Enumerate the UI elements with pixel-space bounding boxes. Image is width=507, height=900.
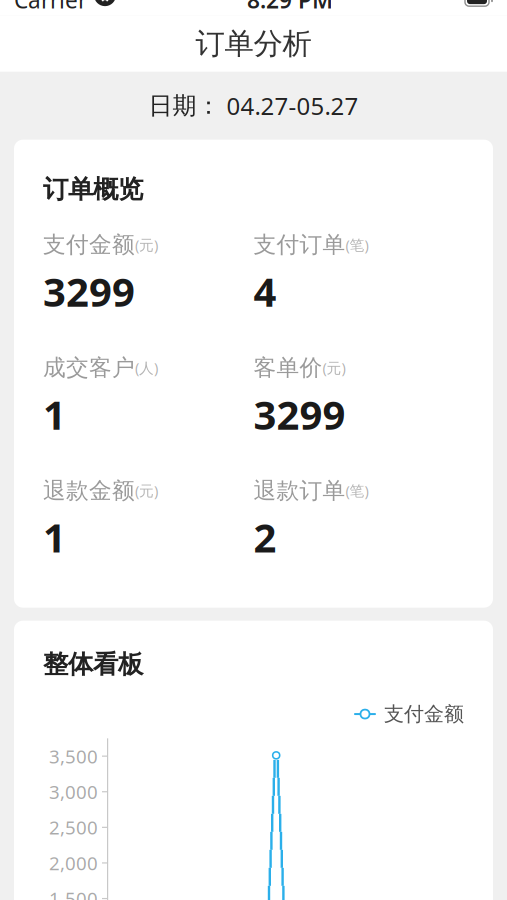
staticText: 退款金额 bbox=[43, 477, 135, 504]
staticText: 4 bbox=[253, 265, 276, 318]
staticText: 2 bbox=[253, 510, 276, 564]
staticText: 日期： bbox=[148, 91, 220, 120]
staticText: 1 bbox=[43, 388, 66, 441]
staticText: 1 bbox=[43, 510, 66, 564]
staticText: 3,000 bbox=[49, 779, 98, 804]
staticText: (元) bbox=[322, 358, 345, 377]
button[interactable]: 日期： bbox=[0, 72, 507, 140]
staticText: 支付金额 bbox=[43, 231, 135, 259]
staticText: (人) bbox=[135, 358, 158, 377]
staticText: (元) bbox=[135, 235, 158, 254]
staticText: 3299 bbox=[43, 265, 135, 318]
staticText: 成交客户 bbox=[43, 354, 135, 381]
staticText: Carrier bbox=[14, 0, 87, 15]
staticText: 1,500 bbox=[49, 886, 98, 900]
staticText: 支付金额 bbox=[384, 702, 464, 726]
staticText: 整体看板 bbox=[43, 649, 143, 680]
staticText: (笔) bbox=[345, 235, 368, 254]
staticText: 支付订单 bbox=[253, 231, 345, 259]
staticText: 3,500 bbox=[49, 744, 98, 768]
staticText: 订单概览 bbox=[43, 174, 143, 205]
staticText: 退款订单 bbox=[253, 477, 345, 504]
staticText: 2,500 bbox=[49, 815, 98, 840]
staticText: 8:29 PM bbox=[247, 0, 333, 15]
staticText: (笔) bbox=[345, 481, 368, 500]
staticText: (元) bbox=[135, 481, 158, 500]
staticText: 客单价 bbox=[253, 354, 322, 381]
button[interactable]: 支付金额 bbox=[353, 702, 464, 726]
staticText: 2,000 bbox=[49, 850, 98, 875]
staticText: 订单分析 bbox=[195, 26, 311, 62]
staticText: 3299 bbox=[253, 388, 345, 441]
staticText: 04.27-05.27 bbox=[220, 90, 358, 122]
